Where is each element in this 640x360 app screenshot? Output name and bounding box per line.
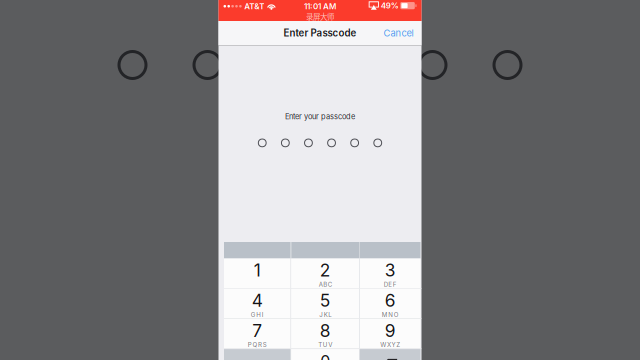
staticText: 5 — [320, 290, 331, 311]
staticText: 录屏大师 — [306, 11, 334, 22]
button[interactable]: 1 — [224, 258, 290, 288]
staticText: 8 — [320, 320, 331, 341]
staticText: Enter Passcode — [283, 27, 356, 39]
button[interactable]: Cancel — [379, 22, 417, 44]
button[interactable]: 9 — [360, 319, 420, 348]
staticText: 11:01 AM — [304, 1, 336, 11]
staticText: 49% — [381, 1, 399, 10]
button[interactable]: 7 — [224, 319, 290, 348]
staticText: JKL — [319, 311, 331, 318]
staticText: 3 — [385, 260, 396, 281]
button[interactable]: 5 — [291, 289, 359, 318]
staticText: 9 — [385, 320, 396, 341]
button[interactable]: 2 — [291, 258, 359, 288]
staticText: TUV — [318, 341, 332, 349]
staticText: 4 — [252, 290, 263, 311]
button[interactable]: 0 — [291, 349, 359, 360]
staticText: ABC — [319, 281, 332, 288]
staticText: DEF — [384, 281, 397, 288]
staticText: 1 — [254, 260, 261, 281]
staticText: WXYZ — [380, 341, 400, 349]
staticText: Enter your passcode — [285, 112, 355, 121]
staticText: 7 — [252, 320, 262, 341]
button[interactable]: 4 — [224, 289, 290, 318]
staticText: GHI — [251, 311, 264, 318]
button[interactable]: 3 — [360, 258, 420, 288]
staticText: Cancel — [383, 27, 413, 39]
staticText: 2 — [320, 260, 331, 281]
staticText: AT&T — [244, 1, 264, 11]
button[interactable]: 6 — [360, 289, 420, 318]
staticText: 6 — [385, 290, 396, 311]
staticText: PQRS — [248, 341, 267, 349]
staticText: 0 — [320, 352, 330, 360]
button[interactable]: Delete — [360, 349, 420, 360]
staticText: MNO — [382, 311, 399, 318]
button[interactable]: 8 — [291, 319, 359, 348]
